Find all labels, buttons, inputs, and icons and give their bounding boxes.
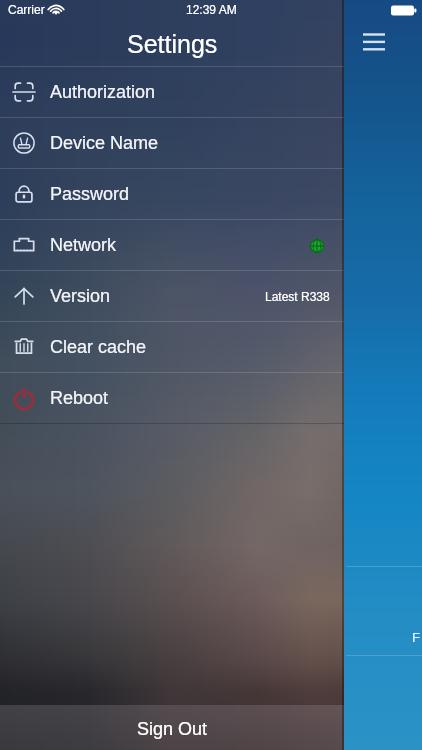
button[interactable]: Sign Out — [0, 705, 344, 750]
staticText: Clear cache — [50, 337, 147, 357]
button[interactable]: Menu — [358, 28, 390, 56]
button[interactable]: Device Name — [0, 118, 344, 168]
staticText: Network — [50, 235, 117, 255]
staticText: Latest R338 — [265, 290, 330, 303]
button[interactable]: Authorization — [0, 67, 344, 117]
staticText: Reboot — [50, 388, 109, 408]
button[interactable]: Reboot — [0, 373, 344, 423]
staticText: Device Name — [50, 133, 159, 153]
staticText: Version — [50, 286, 111, 306]
button[interactable]: Password — [0, 169, 344, 219]
button[interactable]: Clear cache — [0, 322, 344, 372]
button[interactable]: Version — [0, 271, 344, 321]
button[interactable]: Network — [0, 220, 344, 270]
staticText: Carrier — [8, 3, 45, 16]
staticText: Authorization — [50, 82, 156, 102]
staticText: F — [412, 630, 420, 645]
staticText: 12:39 AM — [186, 3, 237, 16]
staticText: Settings — [127, 30, 218, 58]
staticText: Password — [50, 184, 130, 204]
staticText: Sign Out — [137, 719, 208, 739]
